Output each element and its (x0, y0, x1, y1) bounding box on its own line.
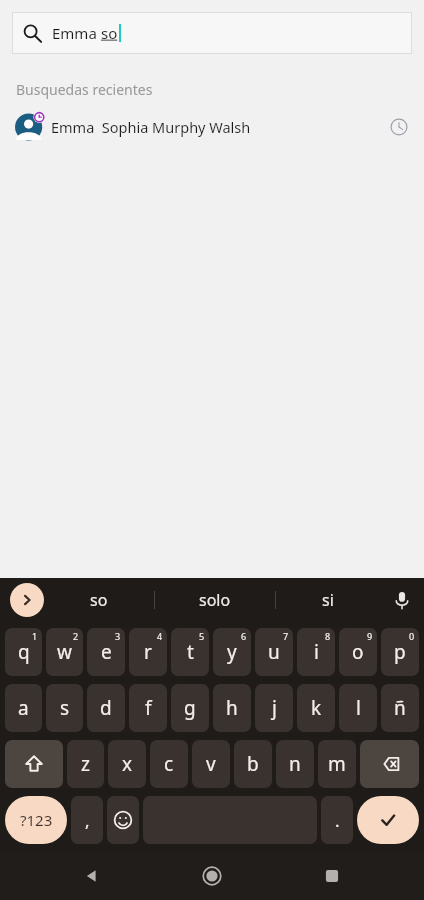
button[interactable]: Shift (5, 740, 63, 788)
staticText: g (184, 695, 196, 721)
button[interactable]: Recents (310, 854, 354, 898)
button[interactable]: s (46, 684, 83, 732)
button[interactable]: n (276, 740, 314, 788)
button[interactable]: x (108, 740, 146, 788)
staticText: f (145, 695, 152, 721)
button[interactable]: g (171, 684, 209, 732)
other: Search (22, 23, 42, 43)
button[interactable]: si (276, 578, 380, 622)
staticText: 7 (283, 630, 289, 642)
staticText: k (311, 695, 322, 721)
staticText: ?123 (20, 810, 53, 830)
staticText: 6 (241, 630, 247, 642)
button[interactable]: p (381, 628, 419, 676)
button[interactable]: Emma Sophia Murphy Walsh (0, 107, 424, 147)
button[interactable]: c (150, 740, 188, 788)
staticText: 1 (32, 630, 38, 642)
staticText: Emma Sophia Murphy Walsh (51, 117, 251, 137)
button[interactable]: so (44, 578, 154, 622)
button[interactable]: z (67, 740, 104, 788)
button[interactable]: i (297, 628, 335, 676)
staticText: . (335, 809, 340, 832)
staticText: r (144, 639, 152, 665)
staticText: d (100, 695, 112, 721)
staticText: h (226, 695, 238, 721)
button[interactable]: h (213, 684, 251, 732)
staticText: q (18, 639, 30, 665)
button[interactable]: q (5, 628, 42, 676)
button[interactable]: k (297, 684, 335, 732)
button[interactable]: . (321, 796, 353, 844)
staticText: 5 (199, 630, 205, 642)
staticText: Busquedas recientes (16, 80, 153, 99)
button[interactable]: ñ (381, 684, 419, 732)
staticText: so (101, 23, 118, 43)
staticText: o (352, 639, 364, 665)
staticText: , (85, 809, 90, 832)
button[interactable]: ?123 (5, 796, 67, 844)
button[interactable]: Search (12, 12, 412, 54)
button[interactable]: solo (155, 578, 275, 622)
staticText: 9 (367, 630, 373, 642)
staticText: Emma (52, 23, 101, 43)
staticText: t (187, 639, 194, 665)
staticText: c (164, 751, 174, 777)
staticText: b (247, 751, 259, 777)
button[interactable]: More suggestions (10, 583, 44, 617)
staticText: 4 (157, 630, 163, 642)
staticText: ñ (394, 695, 406, 721)
staticText: 8 (325, 630, 331, 642)
button[interactable]: w (46, 628, 83, 676)
staticText: i (314, 639, 319, 665)
staticText: x (122, 751, 133, 777)
staticText: z (81, 751, 90, 777)
staticText: si (322, 589, 334, 611)
button[interactable]: m (318, 740, 356, 788)
button[interactable]: j (255, 684, 293, 732)
staticText: l (356, 695, 361, 721)
staticText: so (90, 589, 108, 611)
button[interactable]: l (339, 684, 377, 732)
staticText: p (394, 639, 406, 665)
staticText: j (272, 695, 277, 721)
staticText: v (206, 751, 216, 777)
staticText: n (289, 751, 301, 777)
button[interactable]: Voice input (380, 578, 424, 622)
button[interactable]: v (192, 740, 230, 788)
button[interactable]: d (87, 684, 125, 732)
button[interactable]: , (71, 796, 103, 844)
staticText: m (328, 751, 346, 777)
button[interactable]: Home (190, 854, 234, 898)
staticText: solo (199, 589, 231, 611)
staticText: e (101, 639, 112, 665)
staticText: a (18, 695, 29, 721)
button[interactable]: e (87, 628, 125, 676)
button[interactable]: Enter (357, 796, 419, 844)
staticText: 0 (409, 630, 415, 642)
button[interactable]: b (234, 740, 272, 788)
button[interactable]: t (171, 628, 209, 676)
staticText: u (268, 639, 280, 665)
button[interactable]: Back (70, 854, 114, 898)
staticText: y (227, 639, 237, 665)
staticText: 3 (115, 630, 121, 642)
staticText: w (57, 639, 72, 665)
button[interactable]: o (339, 628, 377, 676)
button[interactable]: a (5, 684, 42, 732)
button[interactable]: f (129, 684, 167, 732)
button[interactable]: Emoji (107, 796, 139, 844)
button[interactable]: r (129, 628, 167, 676)
button[interactable]: Backspace (360, 740, 419, 788)
button[interactable]: y (213, 628, 251, 676)
button[interactable]: Recent search history (388, 116, 410, 138)
staticText: 2 (73, 630, 79, 642)
staticText: s (60, 695, 70, 721)
button[interactable]: u (255, 628, 293, 676)
